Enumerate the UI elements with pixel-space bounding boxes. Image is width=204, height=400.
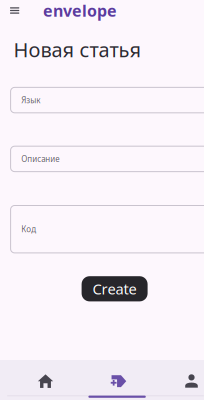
button[interactable]: Home xyxy=(9,361,82,400)
button[interactable]: Create xyxy=(82,276,148,301)
staticText: Описание xyxy=(21,154,59,164)
button[interactable]: Profile xyxy=(155,361,204,400)
staticText: Код xyxy=(21,224,36,234)
button[interactable]: Menu xyxy=(0,3,43,18)
staticText: Язык xyxy=(21,95,40,105)
button[interactable]: envelope xyxy=(43,0,117,21)
staticText: envelope xyxy=(43,0,117,21)
staticText: Новая статья xyxy=(13,36,141,63)
button[interactable]: New article xyxy=(82,361,155,400)
staticText: Create xyxy=(93,279,137,299)
